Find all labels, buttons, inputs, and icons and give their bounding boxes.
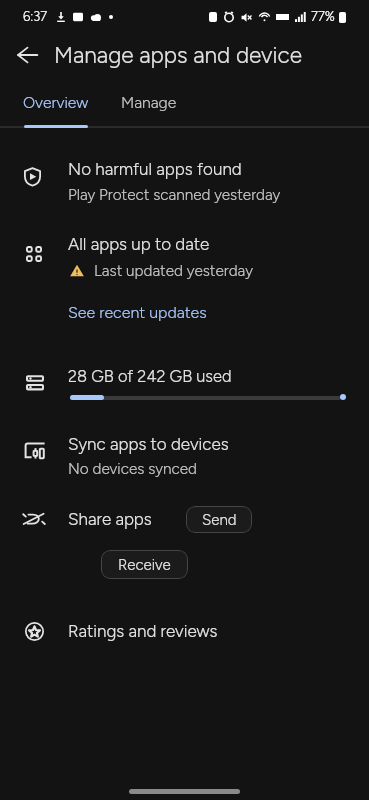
staticText: Send bbox=[202, 511, 237, 529]
button[interactable]: Manage bbox=[111, 80, 186, 125]
staticText: 77% bbox=[311, 9, 335, 25]
staticText: Share apps bbox=[68, 509, 152, 529]
staticText: Ratings and reviews bbox=[68, 621, 218, 641]
staticText: Manage bbox=[121, 93, 177, 112]
button[interactable]: See recent updates bbox=[68, 303, 207, 322]
staticText: No devices synced bbox=[68, 459, 197, 477]
staticText: See recent updates bbox=[68, 303, 207, 322]
staticText: Overview bbox=[23, 93, 89, 112]
staticText: 28 GB of 242 GB used bbox=[68, 366, 232, 386]
staticText: Play Protect scanned yesterday bbox=[68, 185, 281, 203]
staticText: Last updated yesterday bbox=[94, 261, 253, 279]
staticText: Sync apps to devices bbox=[68, 434, 229, 454]
staticText: No harmful apps found bbox=[68, 159, 242, 179]
button[interactable]: Back bbox=[6, 34, 48, 76]
staticText: Receive bbox=[118, 556, 171, 574]
button[interactable]: Send bbox=[186, 506, 252, 533]
staticText: All apps up to date bbox=[68, 234, 210, 254]
button[interactable]: Receive bbox=[101, 550, 188, 579]
button[interactable] bbox=[0, 149, 369, 209]
staticText: Manage apps and device bbox=[54, 42, 302, 69]
staticText: 6:37 bbox=[23, 9, 48, 25]
button[interactable]: Overview bbox=[0, 80, 111, 125]
